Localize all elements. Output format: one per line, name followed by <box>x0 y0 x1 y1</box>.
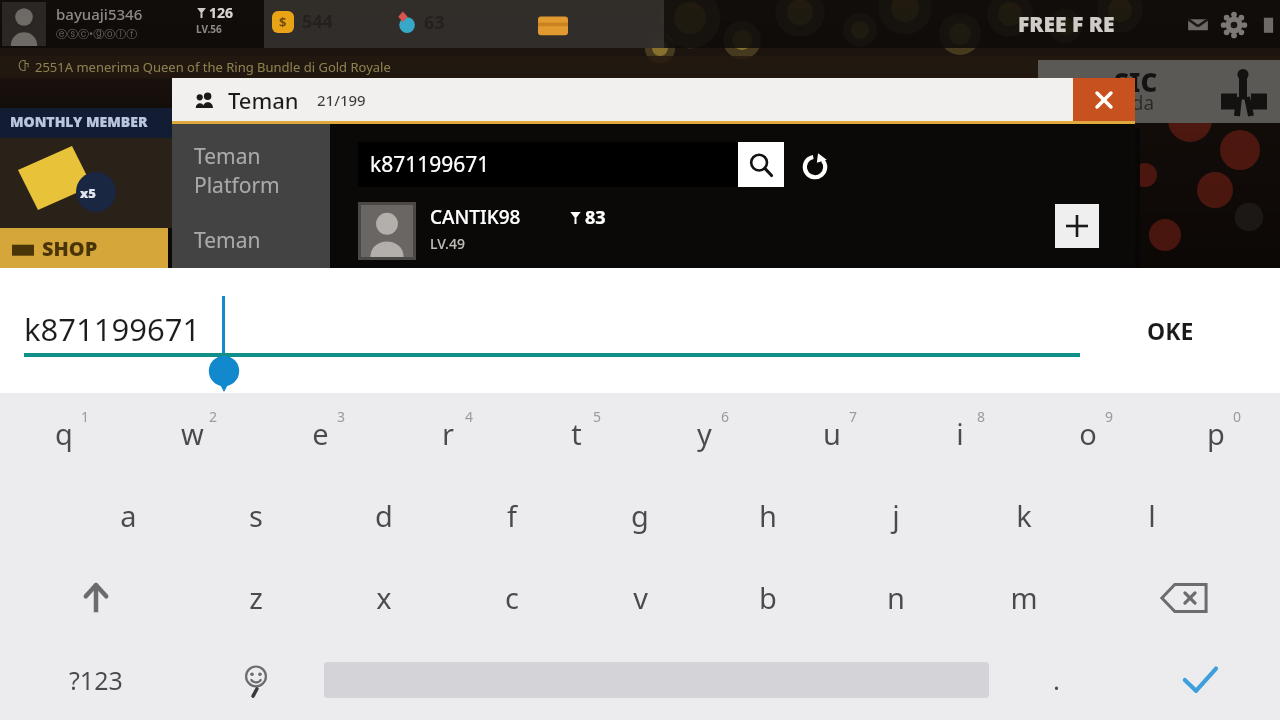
button[interactable]: Teman <box>172 124 330 216</box>
staticText: q <box>55 414 73 453</box>
button[interactable]: Add friend <box>1055 204 1099 248</box>
button[interactable]: CANTIK98 <box>358 202 1135 268</box>
button[interactable]: k <box>960 475 1088 557</box>
staticText: 63 <box>424 10 445 35</box>
button[interactable]: p <box>1152 393 1280 475</box>
staticText: 21/199 <box>317 90 366 110</box>
button[interactable]: j <box>832 475 960 557</box>
button[interactable]: Backspace <box>1088 557 1280 639</box>
button[interactable]: SHOP <box>0 228 168 268</box>
staticText: OKE <box>1147 315 1194 346</box>
button[interactable]: Shift <box>0 557 192 639</box>
staticText: Teman <box>194 226 261 255</box>
button[interactable]: f <box>448 475 576 557</box>
staticText: w <box>181 414 204 453</box>
staticText: 3 <box>337 407 346 426</box>
staticText: ?123 <box>69 663 123 697</box>
staticText: h <box>759 496 777 535</box>
staticText: CANTIK98 <box>430 204 521 230</box>
staticText: k871199671 <box>370 150 490 179</box>
button[interactable]: ?123 <box>0 639 192 720</box>
staticText: LV.56 <box>196 22 222 36</box>
button[interactable]: Emoji <box>192 639 320 720</box>
staticText: 2 <box>209 407 218 426</box>
button[interactable]: Space <box>320 639 992 720</box>
button[interactable]: y <box>640 393 768 475</box>
button[interactable]: q <box>0 393 128 475</box>
button[interactable]: a <box>64 475 192 557</box>
button[interactable]: k871199671 <box>358 142 738 187</box>
staticText: ⓔⓢⓒ•ⓖⓞⓛⓕ <box>56 26 138 41</box>
staticText: 1 <box>81 407 90 426</box>
staticText: $ <box>279 13 287 31</box>
staticText: t <box>571 414 582 453</box>
button[interactable]: b <box>704 557 832 639</box>
button[interactable]: Search <box>738 142 784 187</box>
staticText: m <box>1010 578 1038 617</box>
staticText: r <box>442 414 454 453</box>
button[interactable]: x <box>320 557 448 639</box>
staticText: z <box>249 578 263 617</box>
staticText: x <box>376 578 392 617</box>
staticText: 126 <box>209 3 234 22</box>
staticText: a <box>120 496 137 535</box>
staticText: 6 <box>721 407 730 426</box>
button[interactable]: Settings <box>1221 12 1247 38</box>
staticText: Platform <box>194 171 280 200</box>
button[interactable]: OKE <box>1133 305 1208 356</box>
button[interactable]: . <box>992 639 1120 720</box>
button[interactable]: Battery <box>1257 12 1280 38</box>
button[interactable]: h <box>704 475 832 557</box>
button[interactable]: z <box>192 557 320 639</box>
staticText: uda <box>1120 90 1155 116</box>
button[interactable]: r <box>384 393 512 475</box>
staticText: n <box>887 578 905 617</box>
staticText: j <box>892 496 900 535</box>
button[interactable]: v <box>576 557 704 639</box>
staticText: i <box>956 414 964 453</box>
button[interactable]: i <box>896 393 1024 475</box>
button[interactable]: Mail <box>1185 12 1211 38</box>
button[interactable]: Enter <box>1120 639 1280 720</box>
staticText: c <box>505 578 519 617</box>
button[interactable]: u <box>768 393 896 475</box>
staticText: u <box>823 414 841 453</box>
staticText: f <box>507 496 517 535</box>
staticText: b <box>759 578 777 617</box>
staticText: bayuaji5346 <box>56 4 143 24</box>
staticText: k <box>1016 496 1032 535</box>
staticText: SIC <box>1114 64 1158 99</box>
staticText: y <box>697 414 712 453</box>
button[interactable]: w <box>128 393 256 475</box>
staticText: x5 <box>80 184 96 202</box>
button[interactable]: e <box>256 393 384 475</box>
staticText: MONTHLY MEMBER <box>10 112 148 131</box>
button[interactable]: c <box>448 557 576 639</box>
staticText: 4 <box>465 407 474 426</box>
staticText: SHOP <box>42 235 98 262</box>
button[interactable]: l <box>1088 475 1216 557</box>
button[interactable]: o <box>1024 393 1152 475</box>
button[interactable]: Close <box>1073 78 1135 121</box>
button[interactable]: m <box>960 557 1088 639</box>
button[interactable]: d <box>320 475 448 557</box>
staticText: Teman <box>194 142 261 171</box>
button[interactable]: Teman <box>172 216 330 268</box>
button[interactable]: MONTHLY MEMBER <box>0 108 172 228</box>
staticText: s <box>249 496 263 535</box>
button[interactable]: Refresh <box>798 148 832 182</box>
staticText: k871199671 <box>24 308 201 350</box>
staticText: p <box>1207 414 1225 453</box>
staticText: v <box>633 578 648 617</box>
staticText: l <box>1148 496 1156 535</box>
staticText: d <box>375 496 393 535</box>
button[interactable]: g <box>576 475 704 557</box>
staticText: Teman <box>228 85 299 115</box>
staticText: 83 <box>585 205 606 230</box>
button[interactable]: t <box>512 393 640 475</box>
staticText: 0 <box>1233 407 1242 426</box>
staticText: o <box>1079 414 1097 453</box>
button[interactable]: s <box>192 475 320 557</box>
staticText: . <box>1053 662 1060 697</box>
button[interactable]: n <box>832 557 960 639</box>
